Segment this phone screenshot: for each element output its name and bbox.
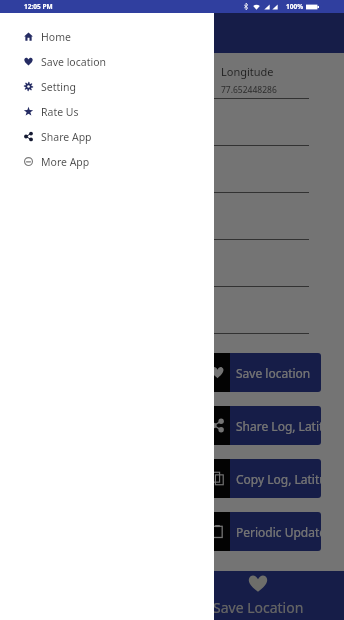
staticText: Periodic Update Location xyxy=(236,524,321,540)
staticText: Longitude xyxy=(22,64,75,79)
staticText: 77.652448286 xyxy=(221,84,277,96)
staticText: Rate Us xyxy=(41,105,79,119)
button[interactable]: Copy Log, Latitude, Longitude xyxy=(230,459,321,498)
button[interactable]: Rate Us xyxy=(0,99,214,124)
button[interactable] xyxy=(0,13,344,620)
staticText: Latitude xyxy=(22,111,65,126)
button[interactable]: Home xyxy=(0,24,214,49)
button[interactable]: More App xyxy=(0,149,214,174)
staticText: 100% xyxy=(286,2,304,11)
button[interactable]: Share Log, Latitude, Longitude xyxy=(230,406,321,445)
staticText: 77.652448286 xyxy=(22,84,78,96)
staticText: More App xyxy=(41,155,90,169)
staticText: Setting xyxy=(41,80,76,94)
staticText: Copy Log, Latitude, Longitude xyxy=(236,471,321,487)
staticText: GPS Location xyxy=(48,24,135,43)
staticText: Home xyxy=(41,30,71,44)
staticText: Share App xyxy=(41,130,92,144)
staticText: Save Location xyxy=(213,598,304,617)
button[interactable]: Save location xyxy=(0,49,214,74)
staticText: 12:05 PM xyxy=(24,2,53,11)
staticText: Longitude xyxy=(221,64,274,79)
button[interactable]: Save Location xyxy=(172,571,344,620)
staticText: 12.903561820 xyxy=(22,131,78,143)
button[interactable]: Setting xyxy=(0,74,214,99)
staticText: Save location xyxy=(236,365,311,381)
button[interactable]: Share App xyxy=(0,124,214,149)
button[interactable]: Save location xyxy=(230,353,321,392)
button[interactable]: Periodic Update Location xyxy=(230,512,321,551)
staticText: Share Log, Latitude, Longitude xyxy=(236,418,321,434)
staticText: Altitude xyxy=(22,158,63,173)
staticText: Save location xyxy=(41,55,106,69)
